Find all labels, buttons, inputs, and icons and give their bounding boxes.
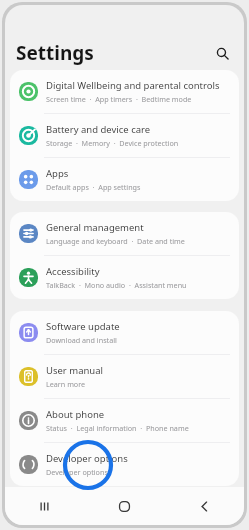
staticText: Storage · Memory · Device protection (46, 138, 179, 148)
staticText: Apps (46, 167, 69, 180)
staticText: Digital Wellbeing and parental controls (46, 79, 220, 92)
button[interactable]: User manual (10, 355, 239, 398)
staticText: Default apps · App settings (46, 182, 141, 192)
staticText: Settings (16, 40, 94, 66)
staticText: Developer options (46, 467, 108, 477)
staticText: Screen time · App timers · Bedtime mode (46, 94, 192, 104)
button[interactable]: Digital Wellbeing and parental controls (10, 70, 239, 113)
staticText: Software update (46, 320, 120, 333)
staticText: User manual (46, 364, 103, 377)
staticText: Language and keyboard · Date and time (46, 236, 185, 246)
staticText: Accessibility (46, 265, 100, 278)
staticText: Download and install (46, 335, 117, 345)
staticText: Learn more (46, 379, 86, 389)
button[interactable]: Battery and device care (10, 114, 239, 157)
button[interactable]: About phone (10, 399, 239, 442)
button[interactable]: General management (10, 212, 239, 255)
staticText: Status · Legal information · Phone name (46, 423, 189, 433)
button[interactable]: Back (164, 487, 244, 525)
button[interactable]: Software update (10, 311, 239, 354)
staticText: Developer options (46, 452, 128, 465)
button[interactable]: Home (84, 487, 164, 525)
staticText: General management (46, 221, 144, 234)
staticText: Battery and device care (46, 123, 151, 136)
staticText: TalkBack · Mono audio · Assistant menu (46, 280, 187, 290)
staticText: About phone (46, 408, 105, 421)
button[interactable]: Search (211, 42, 233, 64)
button[interactable]: Recent apps (5, 487, 84, 525)
button[interactable]: Developer options (10, 443, 239, 486)
button[interactable]: Apps (10, 158, 239, 201)
button[interactable]: Accessibility (10, 256, 239, 299)
